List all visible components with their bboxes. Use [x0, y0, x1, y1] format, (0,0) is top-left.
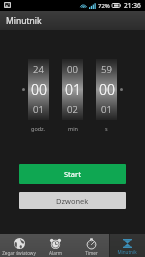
button[interactable]: Minutnik: [0, 11, 145, 30]
staticText: Timer: [85, 250, 98, 256]
other: World clock: [14, 238, 25, 249]
button[interactable]: Dzwonek: [19, 192, 126, 209]
button[interactable]: World clock: [0, 234, 37, 257]
button[interactable]: 00: [62, 59, 83, 120]
button[interactable]: Start: [19, 164, 126, 184]
staticText: Dzwonek: [56, 196, 89, 206]
staticText: s: [105, 125, 108, 132]
button[interactable]: Timer: [73, 234, 109, 257]
button[interactable]: Countdown timer: [109, 234, 145, 257]
staticText: Zegar światowy: [2, 250, 36, 256]
staticText: Start: [64, 169, 81, 179]
other: Timer: [86, 238, 97, 249]
staticText: 00: [99, 80, 115, 99]
other: Countdown timer: [123, 239, 132, 248]
other: Screenshot notification: [4, 2, 11, 8]
staticText: 72%: [98, 2, 110, 10]
staticText: Alarm: [49, 250, 62, 256]
button[interactable]: 24: [28, 59, 49, 120]
other: Alarm: [50, 238, 61, 249]
button[interactable]: 59: [96, 59, 117, 120]
staticText: 01: [33, 103, 44, 116]
staticText: 01: [101, 103, 112, 116]
staticText: Minutnik: [6, 15, 42, 27]
staticText: 00: [31, 80, 47, 99]
staticText: 59: [101, 63, 112, 76]
staticText: 02: [67, 103, 78, 116]
staticText: 01: [65, 80, 81, 99]
staticText: 24: [33, 63, 44, 76]
staticText: 21:36: [124, 1, 141, 10]
staticText: godz.: [31, 125, 46, 132]
staticText: Minutnik: [117, 249, 137, 255]
staticText: 00: [67, 63, 78, 76]
staticText: min: [68, 125, 78, 132]
button[interactable]: Alarm: [37, 234, 73, 257]
